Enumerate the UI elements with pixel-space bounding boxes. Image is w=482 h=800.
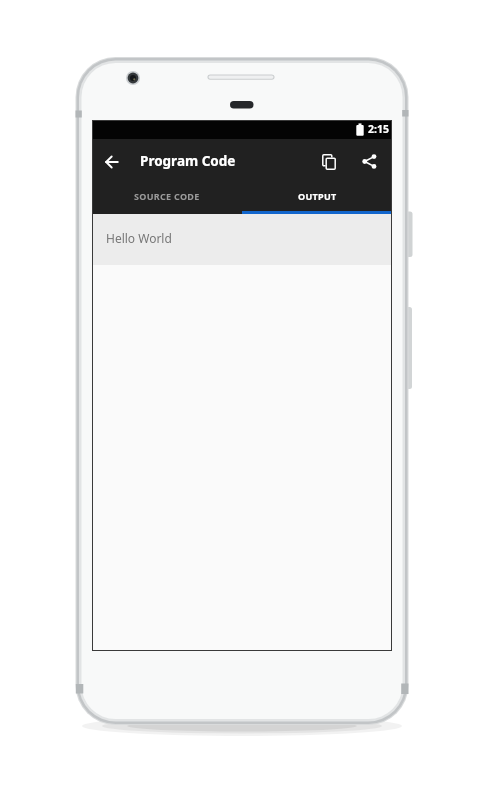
button[interactable]: Hello World xyxy=(92,214,392,265)
button[interactable] xyxy=(92,139,132,184)
staticText: Hello World xyxy=(106,230,172,246)
button[interactable] xyxy=(349,139,389,184)
staticText: Program Code xyxy=(140,152,236,170)
button[interactable]: SOURCE CODE xyxy=(92,184,242,211)
staticText: OUTPUT xyxy=(298,190,337,202)
button[interactable]: OUTPUT xyxy=(242,184,392,211)
staticText: SOURCE CODE xyxy=(134,190,200,202)
staticText: 2:15 xyxy=(368,122,389,136)
button[interactable] xyxy=(309,139,349,184)
